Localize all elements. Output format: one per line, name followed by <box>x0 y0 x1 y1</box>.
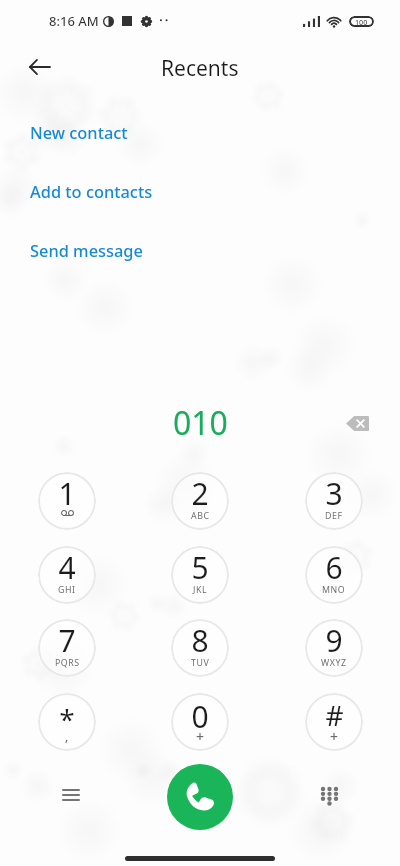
button[interactable]: 4 <box>38 546 96 604</box>
button[interactable]: Menu <box>49 773 93 817</box>
staticText: 1 <box>58 473 76 514</box>
staticText: , <box>65 728 69 744</box>
staticText: 5 <box>191 547 209 588</box>
staticText: New contact <box>30 121 128 143</box>
staticText: Recents <box>161 54 239 83</box>
button[interactable]: star <box>38 693 96 751</box>
button[interactable]: New contact <box>0 110 400 154</box>
button[interactable]: Dialpad <box>307 773 351 817</box>
staticText: 6 <box>325 547 343 588</box>
button[interactable]: 1 <box>38 472 96 530</box>
staticText: ABC <box>191 510 210 522</box>
staticText: WXYZ <box>321 657 347 669</box>
button[interactable]: 7 <box>38 619 96 677</box>
button[interactable]: pound <box>305 693 363 751</box>
staticText: TUV <box>191 657 210 669</box>
staticText: 8 <box>191 620 209 661</box>
staticText: GHI <box>58 584 76 596</box>
staticText: 0 <box>191 696 209 737</box>
staticText: 4 <box>58 547 76 588</box>
button[interactable]: 2 <box>171 472 229 530</box>
button[interactable]: 3 <box>305 472 363 530</box>
staticText: 3 <box>325 473 343 514</box>
button[interactable]: Call <box>167 764 233 830</box>
staticText: Send message <box>30 239 143 261</box>
staticText: MNO <box>322 584 346 596</box>
staticText: + <box>330 727 339 746</box>
button[interactable]: 6 <box>305 546 363 604</box>
staticText: PQRS <box>55 657 80 669</box>
button[interactable]: 5 <box>171 546 229 604</box>
staticText: + <box>196 727 205 746</box>
button[interactable]: 0 <box>171 693 229 751</box>
staticText: # <box>325 696 344 734</box>
button[interactable]: Backspace <box>336 402 378 444</box>
button[interactable]: Send message <box>0 228 400 272</box>
staticText: * <box>59 700 75 738</box>
staticText: DEF <box>325 510 343 522</box>
staticText: 7 <box>58 620 76 661</box>
button[interactable]: Add to contacts <box>0 169 400 213</box>
button[interactable]: Back <box>17 45 61 89</box>
staticText: 8:16 AM <box>49 12 99 30</box>
staticText: 9 <box>325 620 343 661</box>
button[interactable]: 9 <box>305 619 363 677</box>
staticText: Add to contacts <box>30 180 153 202</box>
staticText: 010 <box>173 401 228 445</box>
button[interactable]: 8 <box>171 619 229 677</box>
staticText: JKL <box>193 584 208 596</box>
staticText: 100 <box>355 17 368 27</box>
staticText: 2 <box>191 473 209 514</box>
